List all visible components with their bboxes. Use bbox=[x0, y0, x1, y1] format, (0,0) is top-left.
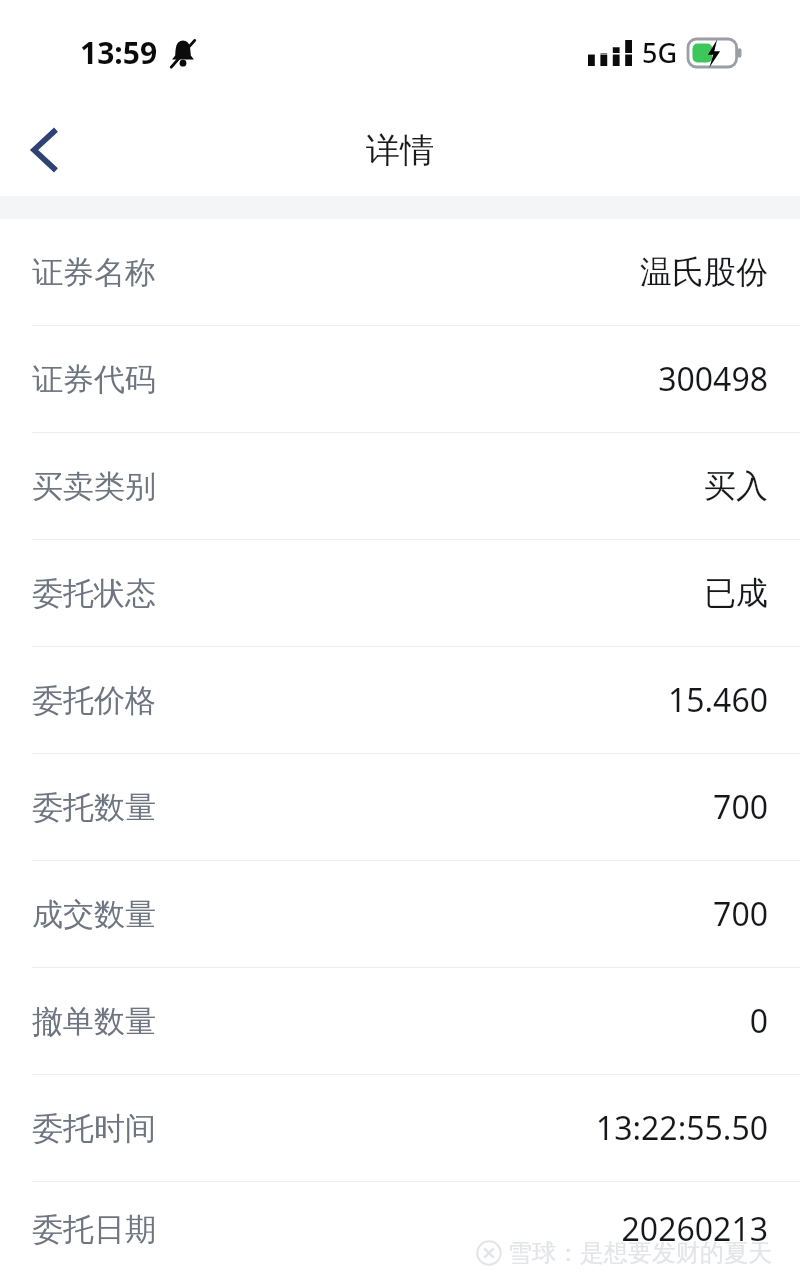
button[interactable]: 撤单数量 bbox=[0, 968, 800, 1074]
button[interactable]: Back bbox=[0, 104, 88, 196]
button[interactable]: 证券名称 bbox=[0, 219, 800, 325]
staticText: 成交数量 bbox=[32, 895, 156, 934]
staticText: 撤单数量 bbox=[32, 1002, 156, 1041]
button[interactable]: 委托状态 bbox=[0, 540, 800, 646]
staticText: 15.460 bbox=[667, 678, 768, 722]
staticText: 雪球：是想要发财的夏天 bbox=[508, 1238, 772, 1268]
staticText: 买入 bbox=[704, 466, 768, 506]
button[interactable]: 买卖类别 bbox=[0, 433, 800, 539]
staticText: 买卖类别 bbox=[32, 467, 156, 506]
staticText: 13:59 bbox=[80, 32, 158, 73]
button[interactable]: 委托日期 bbox=[0, 1182, 800, 1276]
staticText: 温氏股份 bbox=[640, 252, 768, 292]
staticText: 20260213 bbox=[621, 1207, 768, 1251]
button[interactable]: 成交数量 bbox=[0, 861, 800, 967]
button[interactable]: 证券代码 bbox=[0, 326, 800, 432]
staticText: 已成 bbox=[704, 573, 768, 613]
staticText: 委托日期 bbox=[32, 1210, 156, 1249]
staticText: 5G bbox=[642, 34, 678, 71]
staticText: 委托价格 bbox=[32, 681, 156, 720]
staticText: 700 bbox=[713, 785, 768, 829]
staticText: 详情 bbox=[366, 129, 434, 172]
staticText: 委托数量 bbox=[32, 788, 156, 827]
staticText: 300498 bbox=[658, 357, 768, 401]
button[interactable]: 委托数量 bbox=[0, 754, 800, 860]
staticText: 13:22:55.50 bbox=[595, 1106, 768, 1150]
button[interactable]: 委托价格 bbox=[0, 647, 800, 753]
staticText: 证券名称 bbox=[32, 253, 156, 292]
staticText: 700 bbox=[713, 892, 768, 936]
button[interactable]: 委托时间 bbox=[0, 1075, 800, 1181]
staticText: 委托状态 bbox=[32, 574, 156, 613]
staticText: 0 bbox=[749, 999, 768, 1043]
staticText: 证券代码 bbox=[32, 360, 156, 399]
staticText: 委托时间 bbox=[32, 1109, 156, 1148]
